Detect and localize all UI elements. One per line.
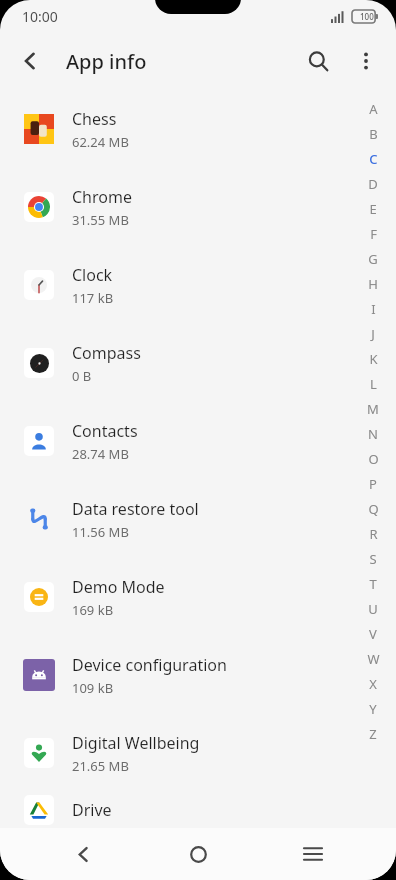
staticText: Digital Wellbeing (72, 732, 200, 754)
staticText: Clock (72, 264, 113, 286)
staticText: R (369, 525, 378, 543)
button[interactable]: P (360, 471, 386, 496)
staticText: P (369, 475, 377, 493)
staticText: Q (368, 500, 379, 518)
button[interactable]: Back (51, 830, 115, 878)
button[interactable]: A (360, 96, 386, 121)
staticText: Z (369, 725, 377, 743)
staticText: S (369, 550, 377, 568)
button[interactable]: Device configuration (0, 636, 396, 714)
staticText: Contacts (72, 420, 138, 442)
staticText: F (370, 225, 377, 243)
button[interactable]: C (360, 146, 386, 171)
staticText: 109 kB (72, 679, 114, 697)
staticText: W (367, 650, 380, 668)
staticText: Data restore tool (72, 498, 199, 520)
staticText: C (369, 150, 378, 168)
button[interactable]: Search (294, 37, 342, 85)
button[interactable]: Demo Mode (0, 558, 396, 636)
button[interactable]: W (360, 646, 386, 671)
button[interactable]: Back (6, 37, 54, 85)
button[interactable]: O (360, 446, 386, 471)
button[interactable]: T (360, 571, 386, 596)
button[interactable]: Digital Wellbeing (0, 714, 396, 792)
staticText: Demo Mode (72, 576, 165, 598)
button[interactable]: Drive (0, 792, 396, 828)
staticText: App info (66, 48, 147, 75)
staticText: A (369, 100, 378, 118)
button[interactable]: Home (166, 830, 230, 878)
staticText: T (369, 575, 377, 593)
staticText: M (367, 400, 379, 418)
staticText: H (368, 275, 378, 293)
staticText: D (368, 175, 378, 193)
staticText: I (371, 300, 376, 318)
staticText: G (368, 250, 378, 268)
staticText: 62.24 MB (72, 133, 129, 151)
staticText: 31.55 MB (72, 211, 129, 229)
button[interactable]: Contacts (0, 402, 396, 480)
staticText: 117 kB (72, 289, 114, 307)
button[interactable]: X (360, 671, 386, 696)
button[interactable]: U (360, 596, 386, 621)
staticText: 169 kB (72, 601, 114, 619)
button[interactable]: K (360, 346, 386, 371)
staticText: N (368, 425, 378, 443)
staticText: 100 (360, 11, 374, 22)
button[interactable]: R (360, 521, 386, 546)
staticText: 0 B (72, 367, 92, 385)
button[interactable]: Data restore tool (0, 480, 396, 558)
button[interactable]: M (360, 396, 386, 421)
button[interactable]: D (360, 171, 386, 196)
staticText: B (369, 125, 378, 143)
button[interactable]: F (360, 221, 386, 246)
staticText: U (368, 600, 378, 618)
staticText: O (368, 450, 379, 468)
button[interactable]: Z (360, 721, 386, 746)
button[interactable]: G (360, 246, 386, 271)
button[interactable]: J (360, 321, 386, 346)
staticText: L (370, 375, 377, 393)
staticText: Chrome (72, 186, 132, 208)
staticText: 10:00 (22, 7, 58, 26)
button[interactable]: H (360, 271, 386, 296)
staticText: Y (369, 700, 377, 718)
button[interactable]: S (360, 546, 386, 571)
button[interactable]: L (360, 371, 386, 396)
button[interactable]: Chess (0, 90, 396, 168)
staticText: E (369, 200, 377, 218)
staticText: 28.74 MB (72, 445, 129, 463)
button[interactable]: Y (360, 696, 386, 721)
staticText: Chess (72, 108, 117, 130)
button[interactable]: B (360, 121, 386, 146)
staticText: V (369, 625, 377, 643)
button[interactable]: More options (342, 37, 390, 85)
staticText: Compass (72, 342, 141, 364)
staticText: Device configuration (72, 654, 227, 676)
staticText: J (371, 325, 375, 343)
button[interactable]: Chrome (0, 168, 396, 246)
button[interactable]: Recent apps (281, 830, 345, 878)
staticText: 11.56 MB (72, 523, 129, 541)
button[interactable]: N (360, 421, 386, 446)
button[interactable]: Compass (0, 324, 396, 402)
staticText: Drive (72, 799, 112, 821)
staticText: 21.65 MB (72, 757, 129, 775)
button[interactable]: I (360, 296, 386, 321)
staticText: X (369, 675, 377, 693)
button[interactable]: Q (360, 496, 386, 521)
staticText: K (369, 350, 378, 368)
button[interactable]: Clock (0, 246, 396, 324)
button[interactable]: V (360, 621, 386, 646)
button[interactable]: E (360, 196, 386, 221)
